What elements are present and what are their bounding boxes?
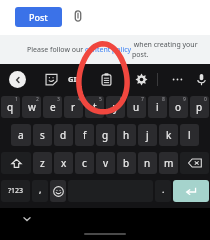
button[interactable]: Hide keyboard (20, 212, 34, 226)
button[interactable]: Post (15, 7, 62, 27)
staticText: ?123 (8, 186, 24, 196)
button[interactable]: GIF (62, 67, 86, 91)
button[interactable]: y (106, 96, 125, 118)
staticText: f (83, 128, 87, 142)
staticText: 6 (120, 96, 123, 103)
staticText: g (102, 128, 109, 142)
staticText: 2 (36, 96, 39, 103)
staticText: e (50, 100, 56, 114)
staticText: q (7, 100, 14, 114)
staticText: w (28, 100, 36, 114)
staticText: m (164, 156, 174, 170)
staticText: x (61, 156, 67, 170)
button[interactable]: e (43, 96, 62, 118)
staticText: 0 (204, 96, 207, 103)
button[interactable]: Settings (130, 68, 152, 90)
staticText: t (93, 100, 97, 114)
staticText: y (113, 100, 119, 114)
button[interactable]: Stickers (40, 68, 62, 90)
staticText: 5 (99, 96, 102, 103)
button[interactable]: l (180, 124, 199, 146)
button[interactable]: o (169, 96, 188, 118)
staticText: . (162, 183, 165, 195)
button[interactable]: g (96, 124, 115, 146)
button[interactable]: d (54, 124, 73, 146)
button[interactable]: z (33, 152, 52, 174)
button[interactable]: p (190, 96, 209, 118)
staticText: when creating your post. (132, 40, 210, 60)
staticText: GIF (68, 74, 81, 84)
staticText: o (175, 100, 182, 114)
staticText: h (123, 128, 130, 142)
button[interactable]: Clipboard (95, 68, 117, 90)
staticText: a (18, 128, 24, 142)
staticText: c (82, 156, 87, 170)
staticText: 4 (78, 96, 81, 103)
staticText: 8 (162, 96, 165, 103)
button[interactable]: i (148, 96, 167, 118)
staticText: k (166, 128, 172, 142)
staticText: u (133, 100, 140, 114)
button[interactable]: b (117, 152, 136, 174)
button[interactable]: Shift (1, 152, 31, 174)
staticText: s (40, 128, 45, 142)
button[interactable]: Back (9, 71, 26, 88)
button[interactable]: r (64, 96, 83, 118)
staticText: l (188, 128, 191, 142)
button[interactable]: k (159, 124, 178, 146)
staticText: r (71, 100, 76, 114)
staticText: 1 (15, 96, 18, 103)
staticText: n (144, 156, 151, 170)
button[interactable]: , (32, 180, 48, 202)
button[interactable]: t (85, 96, 104, 118)
button[interactable]: h (117, 124, 136, 146)
staticText: j (146, 128, 149, 142)
staticText: d (60, 128, 67, 142)
staticText: Please follow our (27, 45, 85, 55)
button[interactable]: Enter (173, 180, 209, 202)
button[interactable]: x (54, 152, 73, 174)
button[interactable]: More options (166, 68, 188, 90)
button[interactable]: Backspace (180, 152, 209, 174)
button[interactable]: u (127, 96, 146, 118)
button[interactable]: m (159, 152, 178, 174)
button[interactable]: a (11, 124, 31, 146)
button[interactable]: . (155, 180, 171, 202)
button[interactable]: Voice input (192, 68, 210, 90)
button[interactable]: ?123 (1, 180, 30, 202)
staticText: v (103, 156, 109, 170)
staticText: i (156, 100, 159, 114)
button[interactable]: n (138, 152, 157, 174)
button[interactable]: content policy (85, 45, 132, 55)
staticText: 9 (183, 96, 186, 103)
button[interactable]: s (33, 124, 52, 146)
button[interactable]: c (75, 152, 94, 174)
staticText: Post (29, 11, 48, 23)
staticText: z (40, 156, 45, 170)
staticText: , (39, 183, 42, 195)
button[interactable]: Emoji (50, 180, 66, 202)
button[interactable]: w (22, 96, 41, 118)
staticText: p (196, 100, 203, 114)
staticText: 7 (141, 96, 144, 103)
button[interactable]: f (75, 124, 94, 146)
button[interactable]: Attach file (68, 6, 88, 26)
staticText: b (123, 156, 130, 170)
button[interactable]: v (96, 152, 115, 174)
staticText: 3 (57, 96, 60, 103)
button[interactable]: q (1, 96, 20, 118)
button[interactable]: j (138, 124, 157, 146)
